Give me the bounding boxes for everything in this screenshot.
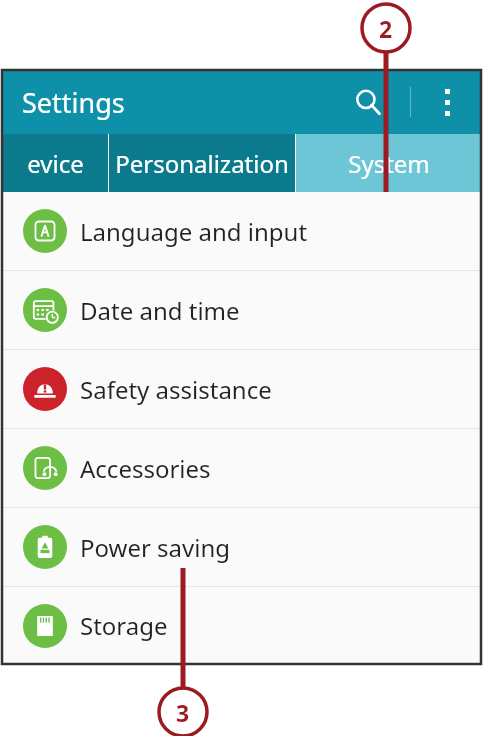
staticText: Date and time	[80, 294, 240, 327]
staticText: Personalization	[115, 147, 289, 180]
staticText: Storage	[80, 609, 168, 642]
staticText: Safety assistance	[80, 373, 272, 406]
button[interactable]: Language and input	[2, 192, 481, 270]
button[interactable]: Date and time	[2, 271, 481, 349]
staticText: evice	[27, 147, 84, 180]
staticText: 2	[379, 13, 393, 44]
staticText: Power saving	[80, 531, 231, 564]
button[interactable]: Storage	[2, 587, 481, 664]
button[interactable]: Power saving	[2, 508, 481, 586]
button[interactable]: evice	[2, 134, 108, 192]
button[interactable]: Personalization	[109, 134, 295, 192]
button[interactable]: More options	[421, 76, 473, 128]
staticText: 3	[176, 697, 190, 728]
button[interactable]: Search	[342, 76, 394, 128]
staticText: System	[348, 147, 430, 180]
staticText: Accessories	[80, 452, 211, 485]
button[interactable]: System	[296, 134, 481, 192]
staticText: Language and input	[80, 215, 308, 248]
staticText: Settings	[22, 84, 125, 121]
button[interactable]: Safety assistance	[2, 350, 481, 428]
button[interactable]: Accessories	[2, 429, 481, 507]
